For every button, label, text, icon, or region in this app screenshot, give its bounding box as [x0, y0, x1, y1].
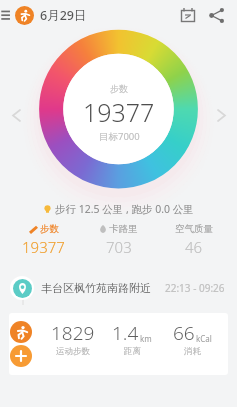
button[interactable]: 卡路里 — [81, 223, 156, 257]
staticText: 19377 — [83, 95, 155, 129]
button[interactable]: Calendar — [177, 4, 199, 26]
staticText: 1.4 — [112, 320, 139, 346]
staticText: kCal — [196, 333, 212, 344]
staticText: 距离 — [124, 346, 141, 357]
staticText: 1829 — [51, 320, 95, 346]
button[interactable]: Add — [10, 345, 32, 367]
staticText: 丰台区枫竹苑南路附近 — [41, 281, 151, 295]
button[interactable]: Menu — [1, 4, 15, 26]
staticText: 步行 12.5 公里 , 跑步 0.0 公里 — [55, 202, 194, 216]
staticText: 消耗 — [184, 346, 201, 357]
button[interactable]: Previous — [8, 107, 24, 123]
staticText: 66 — [173, 320, 195, 346]
staticText: 运动步数 — [56, 346, 90, 357]
staticText: 19377 — [22, 237, 65, 257]
staticText: km — [140, 333, 152, 344]
button[interactable]: Share — [205, 4, 227, 26]
staticText: 22:13 - 09:26 — [165, 281, 225, 295]
button[interactable]: 丰台区枫竹苑南路附近 — [10, 271, 225, 305]
button[interactable]: 空气质量 — [156, 223, 231, 257]
staticText: 步数 — [110, 83, 128, 94]
staticText: 空气质量 — [175, 223, 213, 235]
button[interactable]: 1829 — [9, 313, 228, 375]
staticText: 46 — [185, 237, 203, 257]
button[interactable]: 步数 — [6, 223, 81, 257]
staticText: 6月29日 — [40, 7, 87, 24]
staticText: 目标7000 — [99, 130, 140, 143]
button[interactable]: Profile — [15, 6, 34, 25]
staticText: 卡路里 — [109, 223, 138, 235]
staticText: 703 — [106, 237, 132, 257]
button[interactable]: Next — [213, 107, 229, 123]
staticText: 步数 — [40, 223, 59, 235]
